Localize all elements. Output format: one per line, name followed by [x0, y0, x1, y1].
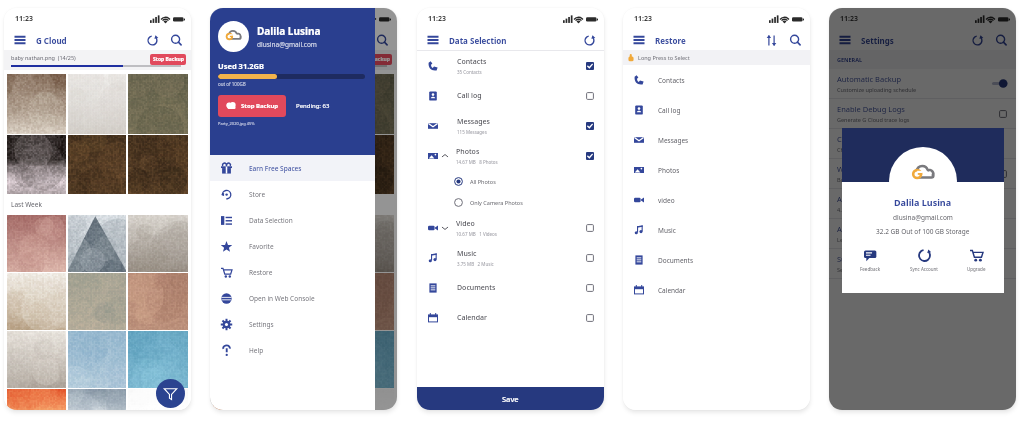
button[interactable]: Save	[417, 387, 604, 410]
button[interactable]: Toggle	[992, 79, 1007, 88]
button[interactable]: Stop Backup	[356, 54, 392, 65]
button[interactable]: Contacts	[623, 65, 810, 95]
button[interactable]	[128, 74, 188, 134]
button[interactable]	[334, 273, 394, 330]
button[interactable]	[7, 74, 66, 134]
button[interactable]	[213, 331, 272, 388]
button[interactable]	[68, 215, 126, 272]
button[interactable]: Video	[417, 213, 604, 243]
button[interactable]	[68, 74, 126, 134]
button[interactable]: Filter	[156, 379, 185, 408]
button[interactable]: Stop Backup	[150, 54, 186, 65]
button[interactable]	[7, 273, 66, 330]
button[interactable]: Open in Web Console	[210, 285, 375, 311]
button[interactable]: Refresh	[145, 33, 160, 48]
button[interactable]	[7, 135, 66, 194]
button[interactable]: Search	[788, 33, 803, 48]
button[interactable]: Toggle	[586, 254, 594, 262]
button[interactable]: Calendar	[623, 275, 810, 305]
button[interactable]	[274, 215, 332, 272]
button[interactable]: Toggle	[586, 62, 594, 70]
button[interactable]: Feedback	[855, 247, 886, 274]
button[interactable]: Photos	[623, 155, 810, 185]
button[interactable]	[334, 331, 394, 388]
button[interactable]: Toggle	[999, 170, 1007, 178]
button[interactable]: All Photos	[417, 171, 604, 192]
button[interactable]	[128, 389, 188, 410]
button[interactable]	[274, 273, 332, 330]
button[interactable]: Refresh	[582, 33, 597, 48]
button[interactable]	[213, 215, 272, 272]
button[interactable]: Menu	[13, 33, 27, 47]
button[interactable]	[68, 135, 126, 194]
button[interactable]	[7, 389, 66, 410]
button[interactable]: Menu	[838, 33, 852, 47]
button[interactable]: Toggle	[586, 152, 594, 160]
button[interactable]: Toggle	[586, 314, 594, 322]
button[interactable]	[128, 215, 188, 272]
button[interactable]	[7, 331, 66, 388]
button[interactable]	[213, 74, 272, 134]
button[interactable]	[274, 135, 332, 194]
button[interactable]: Photos	[417, 141, 604, 171]
button[interactable]: Search	[169, 33, 184, 48]
button[interactable]: Music	[417, 243, 604, 273]
button[interactable]: Call log	[417, 81, 604, 111]
button[interactable]	[334, 74, 394, 134]
button[interactable]	[274, 74, 332, 134]
button[interactable]: Stop Backup	[218, 95, 286, 117]
button[interactable]: App Version	[829, 189, 1016, 218]
button[interactable]: Toggle	[586, 122, 594, 130]
button[interactable]: Contacts	[417, 51, 604, 81]
button[interactable]	[128, 331, 188, 388]
button[interactable]: Toggle	[999, 110, 1007, 118]
button[interactable]: Toggle	[586, 92, 594, 100]
button[interactable]: Menu	[219, 33, 233, 47]
button[interactable]: Menu	[426, 33, 440, 47]
button[interactable]: Toggle	[586, 284, 594, 292]
button[interactable]	[128, 135, 188, 194]
button[interactable]: Settings	[210, 311, 375, 337]
button[interactable]: Wifi Only	[829, 159, 1016, 188]
button[interactable]: About Us	[829, 219, 1016, 248]
button[interactable]: Sort	[764, 33, 779, 48]
button[interactable]: Search	[375, 33, 390, 48]
button[interactable]	[68, 273, 126, 330]
button[interactable]: Search	[994, 33, 1009, 48]
button[interactable]	[68, 389, 126, 410]
button[interactable]: Earn Free Spaces	[210, 155, 375, 181]
button[interactable]: Automatic Backup	[829, 69, 1016, 98]
button[interactable]: Music	[623, 215, 810, 245]
button[interactable]: Calendar	[417, 303, 604, 333]
button[interactable]: Favorite	[210, 233, 375, 259]
button[interactable]: Help	[210, 337, 375, 363]
button[interactable]	[213, 389, 272, 410]
button[interactable]: Call log	[623, 95, 810, 125]
button[interactable]: video	[623, 185, 810, 215]
button[interactable]: Toggle	[586, 224, 594, 232]
button[interactable]	[213, 135, 272, 194]
button[interactable]	[334, 215, 394, 272]
button[interactable]: Documents	[417, 273, 604, 303]
button[interactable]: Change Account	[829, 129, 1016, 158]
button[interactable]	[213, 273, 272, 330]
button[interactable]: Documents	[623, 245, 810, 275]
button[interactable]	[334, 389, 394, 410]
button[interactable]: Store	[210, 181, 375, 207]
button[interactable]: Enable Debug Logs	[829, 99, 1016, 128]
button[interactable]	[7, 215, 66, 272]
button[interactable]: Data Selection	[210, 207, 375, 233]
button[interactable]: Support	[829, 249, 1016, 278]
button[interactable]: Upgrade	[962, 247, 991, 274]
button[interactable]: Menu	[632, 33, 646, 47]
button[interactable]: Restore	[210, 259, 375, 285]
button[interactable]	[334, 135, 394, 194]
button[interactable]: Messages	[417, 111, 604, 141]
button[interactable]: Only Camera Photos	[417, 192, 604, 213]
button[interactable]	[68, 331, 126, 388]
button[interactable]: Messages	[623, 125, 810, 155]
button[interactable]: Refresh	[970, 33, 985, 48]
button[interactable]	[128, 273, 188, 330]
